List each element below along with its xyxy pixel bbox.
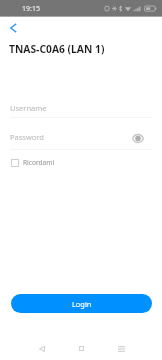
button[interactable]: Back <box>31 338 52 359</box>
button[interactable]: Password <box>10 129 152 147</box>
button[interactable]: Username <box>10 100 152 118</box>
staticText: Login <box>72 299 92 309</box>
button[interactable]: Back <box>2 18 24 38</box>
staticText: TNAS-C0A6 (LAN 1) <box>9 42 105 56</box>
button[interactable]: Home <box>71 338 92 359</box>
staticText: Username <box>10 103 47 113</box>
button[interactable]: Login <box>11 294 152 313</box>
button[interactable]: Ricordami <box>11 156 55 169</box>
staticText: 19:15 <box>22 4 40 14</box>
button[interactable]: Recent apps <box>111 338 132 359</box>
staticText: Ricordami <box>23 158 55 167</box>
button[interactable]: Show password <box>130 131 146 145</box>
staticText: Password <box>10 132 44 142</box>
